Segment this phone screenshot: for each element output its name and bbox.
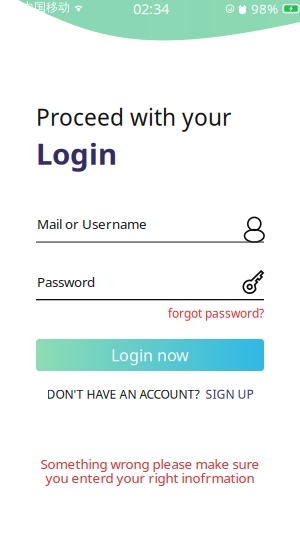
button[interactable]: forgot password? — [36, 306, 264, 320]
staticText: Login — [36, 134, 117, 173]
staticText: Mail or Username — [37, 215, 147, 233]
button[interactable]: SIGN UP — [205, 386, 253, 402]
staticText: 98% — [251, 0, 278, 17]
staticText: 02:34 — [133, 0, 169, 18]
staticText: forgot password? — [168, 305, 264, 321]
staticText: Something wrong please make sure — [40, 455, 259, 473]
button[interactable]: Login now — [36, 339, 264, 371]
staticText: Proceed with your — [36, 102, 231, 132]
staticText: DON'T HAVE AN ACCOUNT? — [46, 386, 199, 402]
staticText: 中国移动 — [22, 0, 70, 14]
staticText: SIGN UP — [205, 386, 253, 402]
staticText — [199, 386, 205, 402]
staticText: you enterd your right inofrmation — [45, 469, 254, 487]
staticText: Password — [37, 273, 95, 291]
staticText: Login now — [111, 344, 189, 366]
